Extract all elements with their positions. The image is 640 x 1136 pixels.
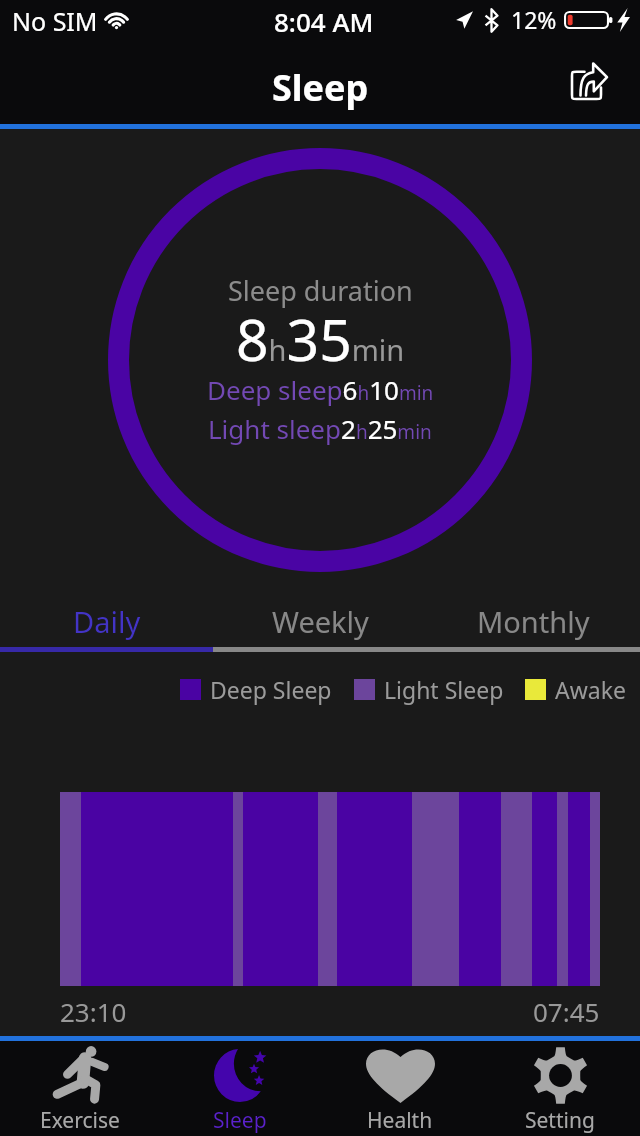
staticText: 8:04 AM	[274, 4, 374, 39]
button[interactable]: Sleep	[160, 1041, 320, 1136]
staticText: Deep Sleep	[210, 674, 332, 705]
staticText: Health	[367, 1106, 433, 1135]
staticText: Weekly	[272, 602, 369, 641]
staticText: 23:10	[60, 994, 127, 1029]
button[interactable]: Exercise	[0, 1041, 160, 1136]
staticText: Exercise	[40, 1106, 120, 1135]
staticText: Light sleep2h25min	[208, 411, 432, 446]
staticText: No SIM	[12, 4, 98, 38]
button[interactable]: Health	[320, 1041, 480, 1136]
button[interactable]: Weekly	[214, 596, 427, 647]
staticText: Sleep	[213, 1106, 267, 1135]
staticText: Sleep duration	[228, 272, 413, 309]
staticText: Monthly	[477, 602, 590, 641]
staticText: Awake	[555, 674, 626, 705]
button[interactable]: Monthly	[427, 596, 640, 647]
staticText: Daily	[73, 602, 141, 641]
staticText: Light Sleep	[384, 674, 504, 705]
staticText: 07:45	[533, 994, 600, 1029]
staticText: Setting	[525, 1106, 595, 1135]
button[interactable]: Share	[554, 46, 626, 114]
staticText: 12%	[511, 4, 557, 35]
button[interactable]: Daily	[0, 596, 214, 647]
button[interactable]: Setting	[480, 1041, 640, 1136]
staticText: 8h35min	[236, 300, 405, 378]
staticText: Deep sleep6h10min	[207, 372, 434, 407]
staticText: Sleep	[272, 63, 369, 112]
